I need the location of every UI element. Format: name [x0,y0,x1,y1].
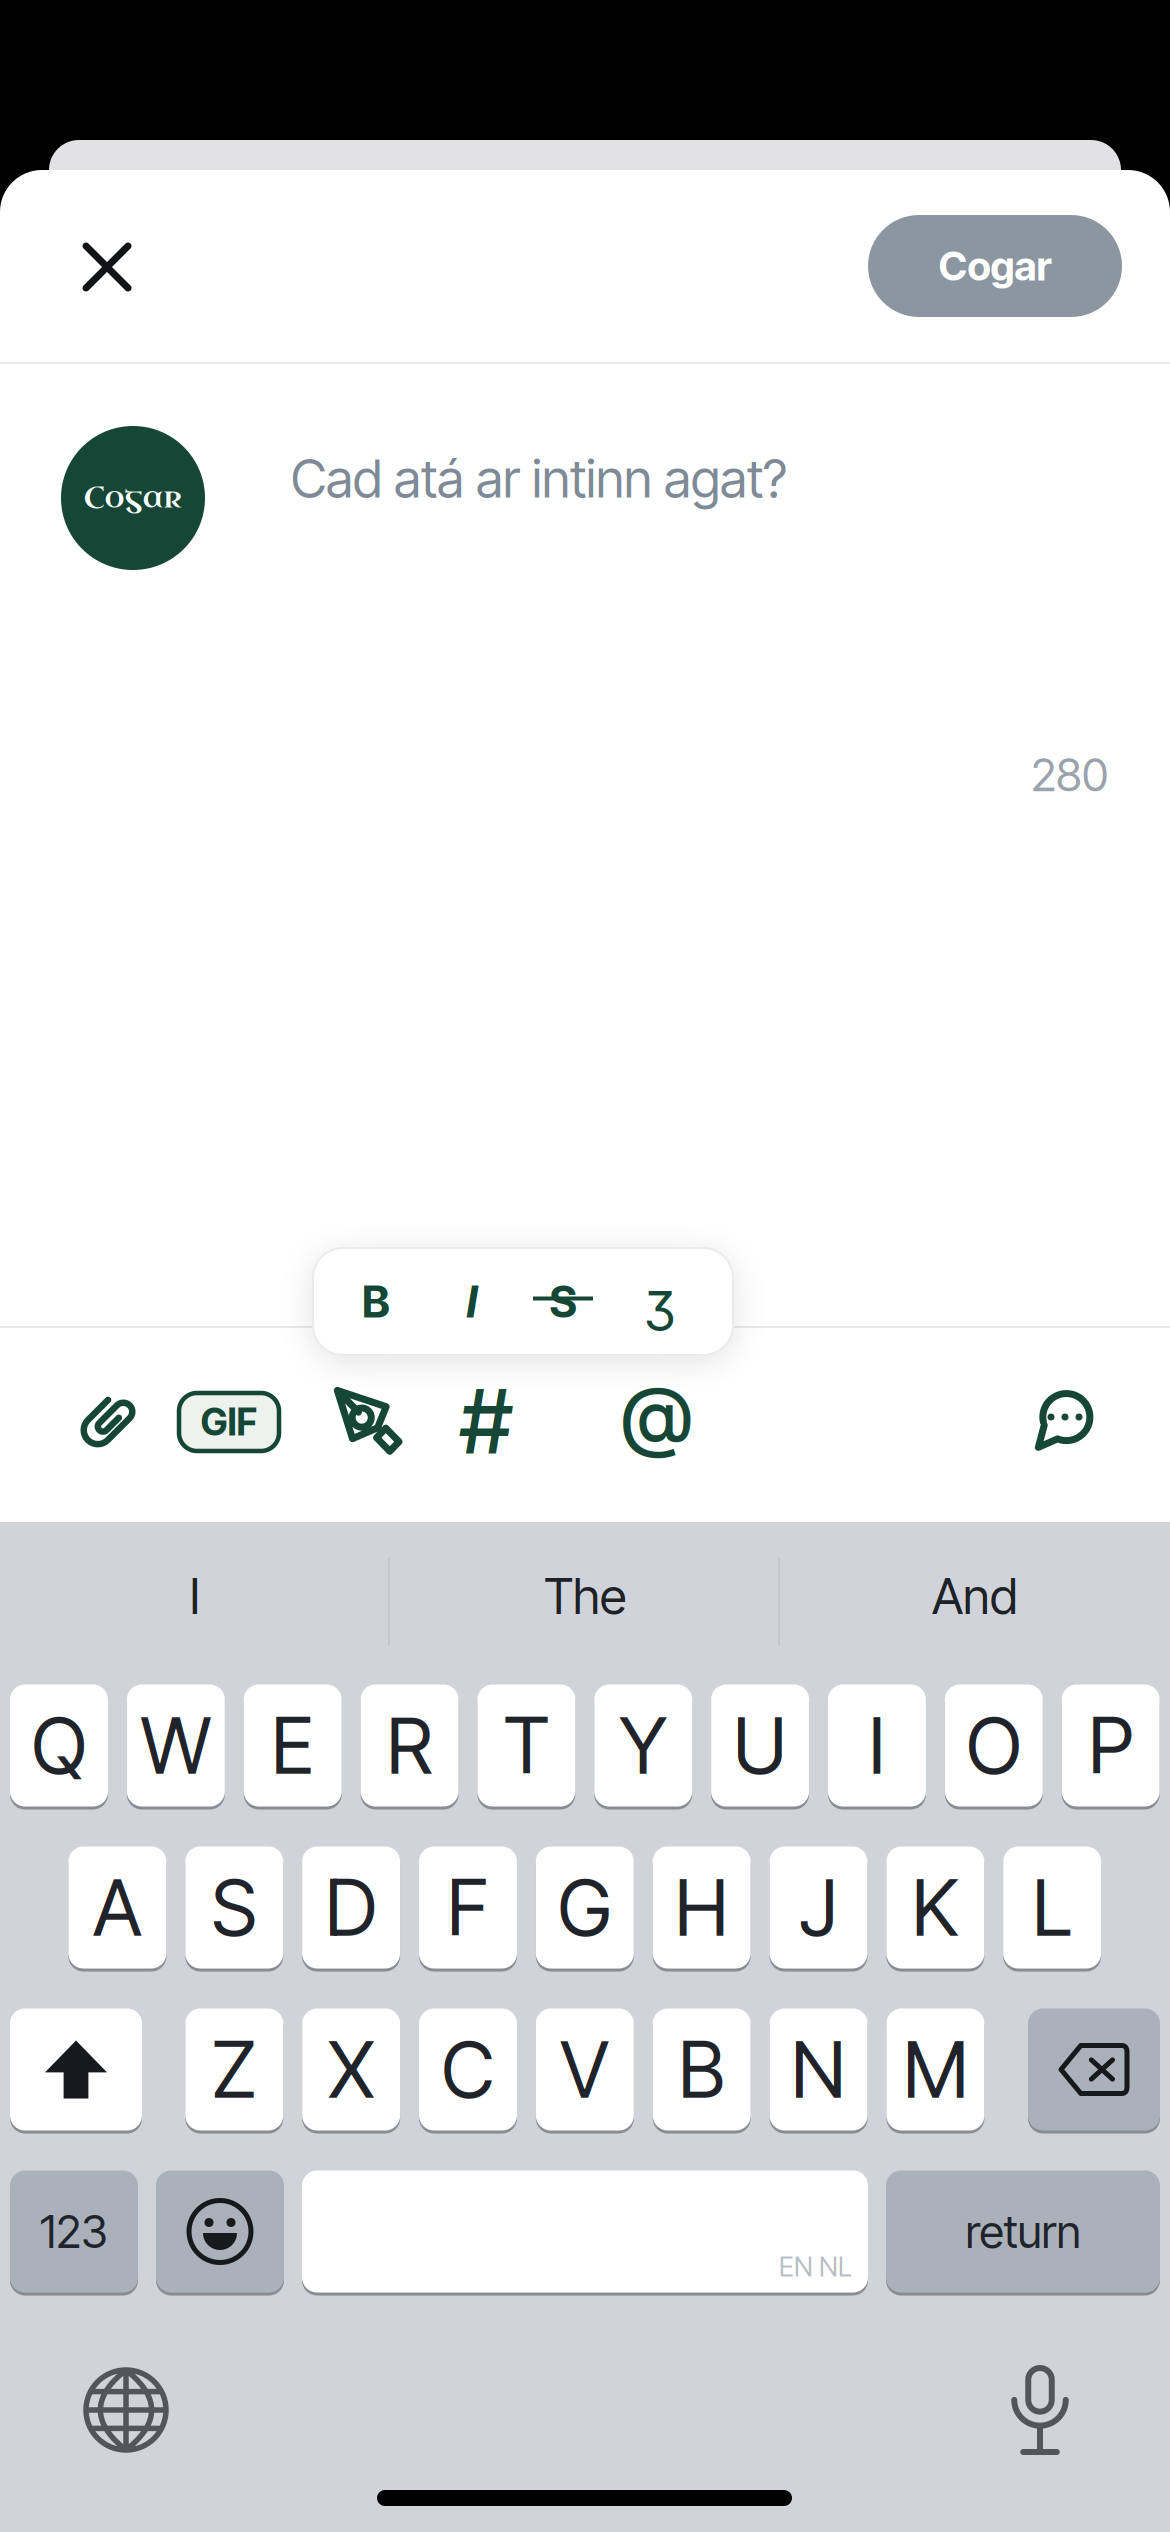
staticText: H [675,1862,729,1953]
staticText: F [447,1862,489,1953]
button[interactable]: @ [597,1355,717,1475]
button[interactable] [10,2007,142,2132]
staticText: T [503,1700,549,1791]
staticText: X [328,2024,374,2115]
staticText: Cogar [938,242,1051,290]
staticText: U [733,1700,787,1791]
button[interactable]: return [886,2169,1160,2294]
button[interactable]: G [536,1845,634,1970]
staticText: 280 [1031,748,1108,801]
staticText: K [912,1862,959,1953]
button[interactable]: X [302,2007,400,2132]
staticText: Cogar [83,479,182,517]
staticText: return [965,2205,1080,2258]
button[interactable]: B [331,1248,421,1355]
staticText: Y [619,1700,667,1791]
staticText: ʒ [644,1270,676,1333]
staticText: Q [31,1700,86,1791]
button[interactable] [1028,2007,1160,2132]
button[interactable]: L [1003,1845,1101,1970]
button[interactable]: R [360,1683,458,1808]
button[interactable] [79,1383,139,1461]
button[interactable]: And [785,1546,1165,1646]
staticText: I [868,1700,885,1791]
button[interactable]: I [828,1683,926,1808]
staticText: S [211,1862,257,1953]
button[interactable]: N [769,2007,867,2132]
button[interactable]: T [477,1683,575,1808]
staticText: R [386,1700,432,1791]
button[interactable]: M [886,2007,984,2132]
staticText: N [791,2024,846,2115]
button[interactable]: S [185,1845,283,1970]
button[interactable] [334,1387,400,1455]
button[interactable]: H [653,1845,751,1970]
button[interactable]: EN NL [302,2169,868,2294]
staticText: O [966,1700,1021,1791]
staticText: B [678,2024,725,2115]
button[interactable] [74,2358,178,2462]
button[interactable]: A [68,1845,166,1970]
button[interactable]: I [427,1248,517,1355]
staticText: @ [621,1369,693,1461]
staticText: 123 [40,2205,108,2258]
button[interactable] [1035,1393,1091,1449]
button[interactable]: U [711,1683,809,1808]
button[interactable]: K [886,1845,984,1970]
button[interactable]: J [769,1845,867,1970]
button[interactable]: D [302,1845,400,1970]
button[interactable]: Q [10,1683,108,1808]
button[interactable]: Y [594,1683,692,1808]
staticText: S [549,1275,576,1327]
button[interactable]: GIF [179,1393,279,1451]
staticText: The [544,1567,626,1625]
staticText: M [903,2024,968,2115]
staticText: E [271,1700,314,1791]
staticText: Cad atá ar intinn agat? [291,448,787,509]
staticText: # [460,1369,512,1473]
staticText: W [141,1700,211,1791]
staticText: Z [212,2024,257,2115]
button[interactable]: P [1062,1683,1160,1808]
button[interactable] [1000,2356,1080,2464]
button[interactable]: The [395,1546,775,1646]
staticText: I [466,1275,477,1327]
button[interactable]: W [127,1683,225,1808]
button[interactable]: E [244,1683,342,1808]
staticText: P [1088,1700,1133,1791]
button[interactable]: ʒ [615,1248,705,1355]
button[interactable]: I [5,1546,385,1646]
staticText: And [932,1567,1018,1625]
button[interactable] [62,222,152,312]
staticText: I [189,1567,200,1625]
button[interactable]: # [431,1366,541,1476]
staticText: C [441,2024,494,2115]
button[interactable]: F [419,1845,517,1970]
button[interactable]: V [536,2007,634,2132]
button[interactable]: O [945,1683,1043,1808]
button[interactable] [156,2169,284,2294]
button[interactable]: Z [185,2007,283,2132]
button[interactable]: S [518,1248,608,1355]
staticText: D [325,1862,377,1953]
button[interactable]: B [653,2007,751,2132]
staticText: GIF [200,1400,257,1444]
staticText: EN NL [779,2251,852,2282]
button[interactable]: 123 [10,2169,138,2294]
staticText: V [560,2024,609,2115]
staticText: B [362,1275,390,1327]
button[interactable]: Cogar [868,215,1122,317]
staticText: L [1032,1862,1072,1953]
staticText: J [799,1862,837,1953]
staticText: A [93,1862,142,1953]
staticText: G [558,1862,612,1953]
button[interactable]: C [419,2007,517,2132]
